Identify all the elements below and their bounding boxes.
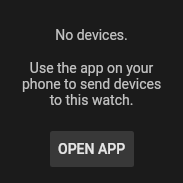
staticText: OPEN APP	[58, 141, 126, 157]
staticText: Use the app on your phone to send device…	[0, 60, 183, 108]
button[interactable]: OPEN APP	[50, 131, 134, 167]
staticText: No devices.	[0, 27, 183, 43]
